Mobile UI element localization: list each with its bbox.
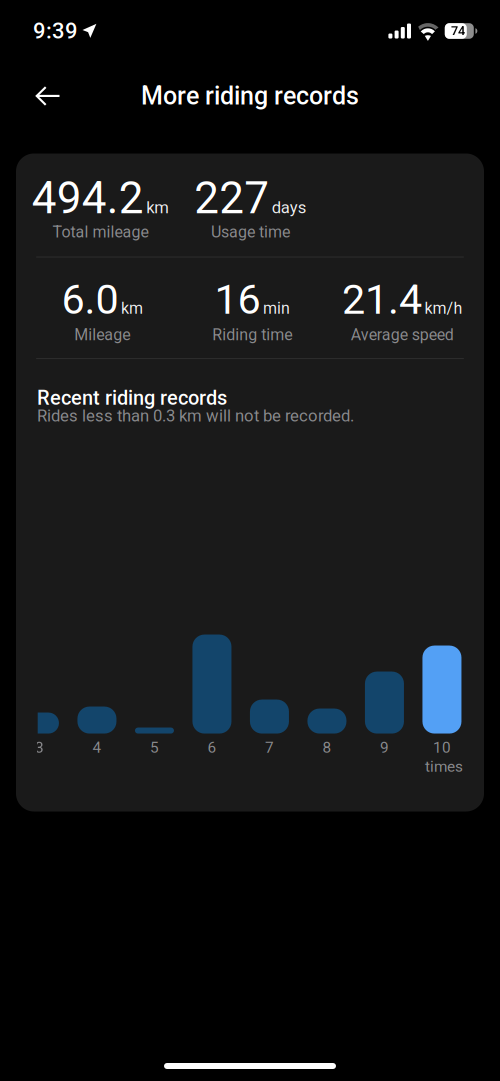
staticText: 7	[265, 739, 274, 757]
staticText: 227	[194, 172, 269, 224]
staticText: Total mileage	[52, 223, 148, 242]
staticText: times	[425, 757, 463, 775]
staticText: Usage time	[211, 223, 290, 242]
staticText: 16	[214, 275, 260, 324]
staticText: km	[146, 198, 169, 217]
staticText: 74	[451, 24, 465, 38]
staticText: 3	[35, 739, 44, 757]
staticText: More riding records	[141, 81, 359, 111]
staticText: Rides less than 0.3 km will not be recor…	[37, 406, 354, 425]
staticText: 494.2	[32, 172, 144, 224]
staticText: 21.4	[342, 275, 422, 324]
staticText: Mileage	[74, 325, 130, 344]
button[interactable]: Back	[25, 74, 71, 118]
staticText: 4	[92, 739, 101, 757]
staticText: km	[121, 299, 143, 318]
staticText: 6.0	[61, 275, 118, 324]
staticText: 10	[433, 739, 451, 757]
staticText: 9:39	[33, 18, 78, 44]
staticText: min	[263, 299, 290, 318]
staticText: Recent riding records	[37, 386, 227, 409]
staticText: days	[272, 198, 307, 217]
staticText: 8	[322, 739, 331, 757]
staticText: km/h	[424, 299, 462, 318]
staticText: 6	[207, 739, 216, 757]
staticText: Average speed	[351, 325, 454, 344]
staticText: Riding time	[212, 325, 292, 344]
staticText: 5	[150, 739, 159, 757]
staticText: 9	[380, 739, 389, 757]
